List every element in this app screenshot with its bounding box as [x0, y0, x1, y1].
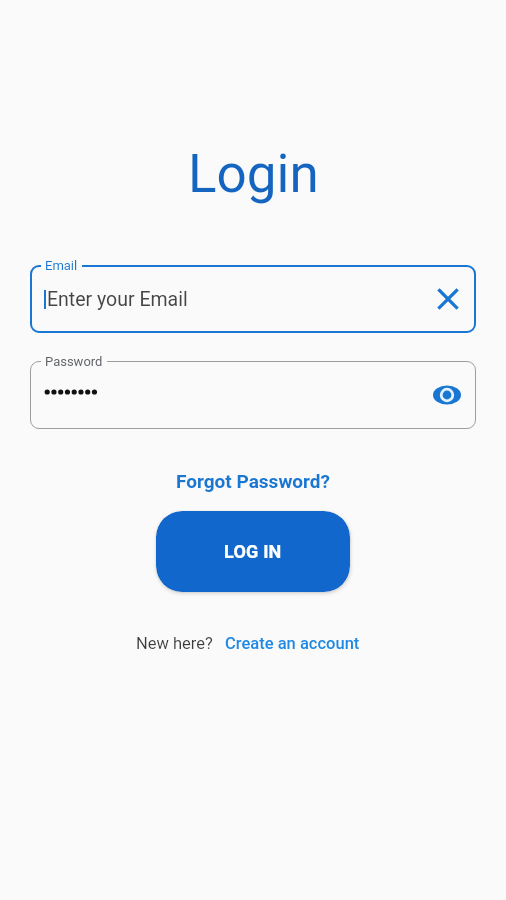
button[interactable]: LOG IN	[156, 511, 350, 592]
staticText: New here?	[136, 634, 213, 653]
button[interactable]: Enter your Email	[30, 265, 476, 333]
button[interactable]	[433, 384, 461, 406]
button[interactable]	[437, 288, 459, 310]
staticText: Email	[45, 258, 78, 273]
staticText: Password	[45, 354, 103, 369]
button[interactable]: Forgot Password?	[176, 470, 331, 492]
staticText: Login	[188, 143, 319, 205]
staticText: Enter your Email	[47, 288, 188, 311]
button[interactable]: Create an account	[225, 634, 360, 653]
staticText: LOG IN	[224, 541, 282, 562]
button[interactable]	[30, 361, 476, 429]
